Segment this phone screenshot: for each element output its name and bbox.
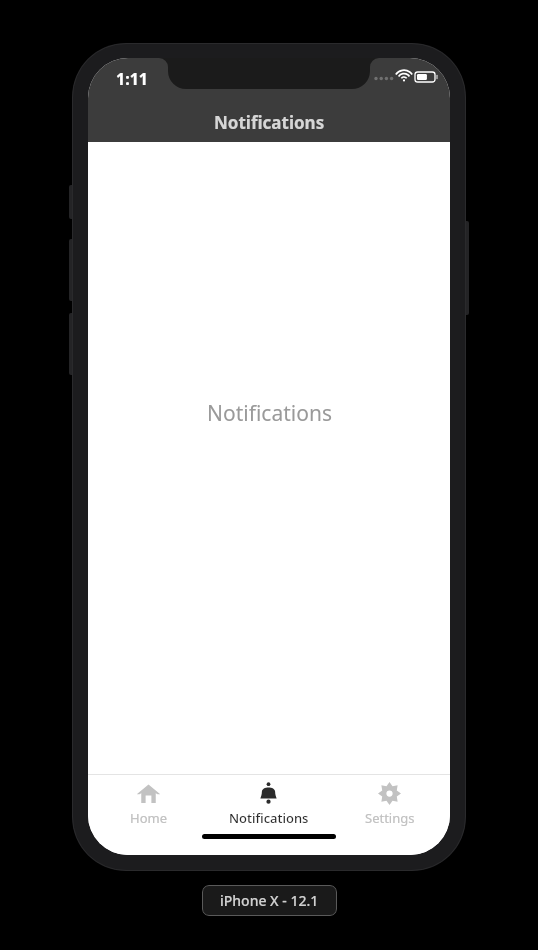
other: Settings — [377, 781, 402, 806]
other: Notifications — [256, 781, 281, 806]
staticText: Notifications — [207, 399, 332, 428]
button[interactable]: Settings — [329, 775, 450, 830]
staticText: 1:11 — [116, 68, 148, 90]
button[interactable]: iPhone X - 12.1 — [202, 885, 337, 916]
staticText: iPhone X - 12.1 — [220, 891, 319, 910]
staticText: Home — [130, 809, 167, 827]
button[interactable]: Notifications — [208, 775, 329, 830]
staticText: Notifications — [229, 809, 309, 827]
button[interactable]: Home — [88, 775, 208, 830]
staticText: Settings — [365, 809, 415, 827]
staticText: Notifications — [214, 111, 325, 134]
